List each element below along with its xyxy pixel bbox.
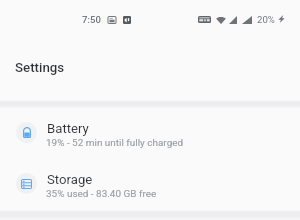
- other: Media notification: [123, 16, 131, 24]
- button[interactable]: Storage: [0, 157, 300, 208]
- staticText: 19% - 52 min until fully charged: [46, 137, 184, 149]
- staticText: 20%: [257, 14, 275, 25]
- other: Mobile signal: [229, 16, 237, 24]
- staticText: Storage: [47, 172, 93, 187]
- staticText: 7:50: [82, 14, 101, 25]
- staticText: 35% used - 83.40 GB free: [46, 188, 157, 200]
- other: Network type: [198, 16, 211, 23]
- other: Mobile signal 2: [242, 16, 252, 24]
- other: Wi-Fi: [216, 16, 226, 24]
- staticText: Battery: [47, 121, 89, 136]
- button[interactable]: Battery: [0, 106, 300, 157]
- staticText: Settings: [15, 60, 65, 76]
- other: Screenshot notification: [108, 16, 116, 24]
